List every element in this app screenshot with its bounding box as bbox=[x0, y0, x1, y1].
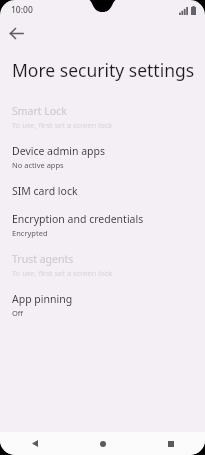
staticText: SIM card lock bbox=[12, 184, 78, 198]
staticText: Trust agents bbox=[12, 252, 74, 266]
button[interactable]: Encryption and credentials bbox=[0, 205, 205, 245]
button[interactable]: Back bbox=[0, 432, 69, 455]
staticText: Device admin apps bbox=[12, 144, 106, 158]
staticText: Encryption and credentials bbox=[12, 212, 144, 226]
button[interactable]: App pinning bbox=[0, 285, 205, 325]
staticText: To use, first set a screen lock bbox=[12, 268, 113, 278]
staticText: Encrypted bbox=[12, 228, 48, 238]
button[interactable]: Device admin apps bbox=[0, 137, 205, 177]
staticText: App pinning bbox=[12, 292, 73, 306]
button[interactable]: Back bbox=[4, 21, 28, 45]
button[interactable]: Trust agents bbox=[0, 245, 205, 285]
button[interactable]: Home bbox=[69, 432, 137, 455]
staticText: Off bbox=[12, 308, 24, 318]
button[interactable]: Smart Lock bbox=[0, 97, 205, 137]
staticText: To use, first set a screen lock bbox=[12, 120, 113, 130]
button[interactable]: SIM card lock bbox=[0, 177, 205, 205]
staticText: 10:00 bbox=[11, 4, 33, 16]
staticText: More security settings bbox=[12, 58, 195, 82]
staticText: Smart Lock bbox=[12, 104, 67, 118]
button[interactable]: Recent apps bbox=[137, 432, 205, 455]
staticText: No active apps bbox=[12, 160, 64, 170]
